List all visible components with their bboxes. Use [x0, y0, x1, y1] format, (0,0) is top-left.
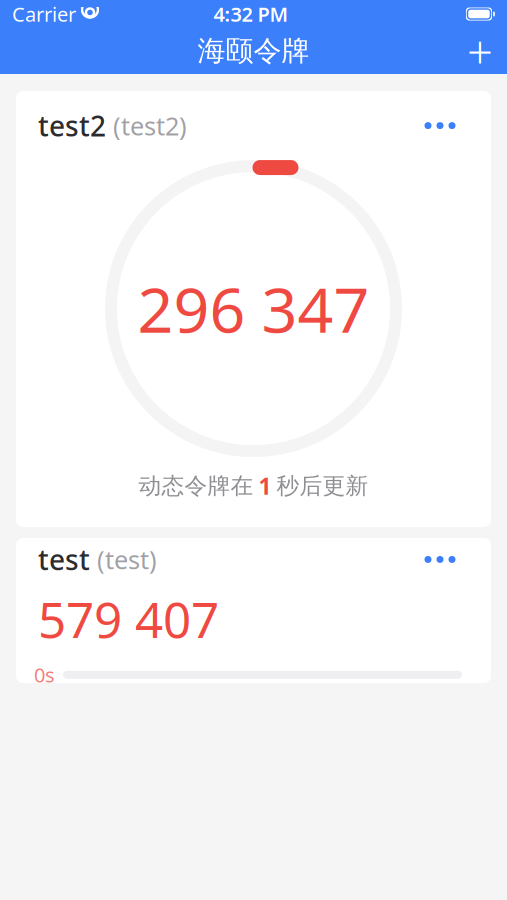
button[interactable]: More options	[411, 109, 469, 143]
staticText: Carrier	[12, 1, 76, 27]
staticText: test2	[38, 107, 106, 144]
staticText: 1	[258, 471, 271, 501]
staticText: test	[38, 541, 90, 578]
staticText: 动态令牌在	[138, 472, 253, 500]
staticText: 海颐令牌	[197, 34, 309, 68]
staticText: (test2)	[113, 109, 187, 142]
staticText: +	[467, 21, 493, 81]
staticText: 秒后更新	[276, 472, 368, 500]
staticText: 4:32 PM	[213, 1, 288, 27]
button[interactable]: Add token	[453, 29, 507, 73]
staticText: 296 347	[137, 267, 369, 350]
staticText: 0s	[34, 662, 55, 688]
staticText: 579 407	[38, 586, 219, 652]
staticText: (test)	[97, 543, 157, 576]
button[interactable]: More options	[411, 542, 469, 576]
